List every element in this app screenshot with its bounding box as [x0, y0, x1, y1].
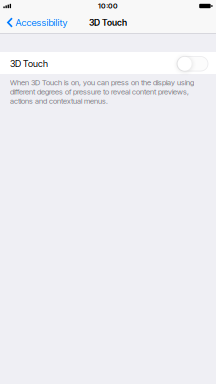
- staticText: 3D Touch: [89, 17, 127, 28]
- staticText: Accessibility: [15, 17, 67, 28]
- button[interactable]: 3D Touch: [0, 52, 216, 74]
- staticText: 10:00: [98, 2, 118, 10]
- staticText: 3D Touch: [10, 58, 48, 69]
- staticText: When 3D Touch is on, you can press on th…: [10, 78, 194, 106]
- button[interactable]: Accessibility: [0, 14, 67, 31]
